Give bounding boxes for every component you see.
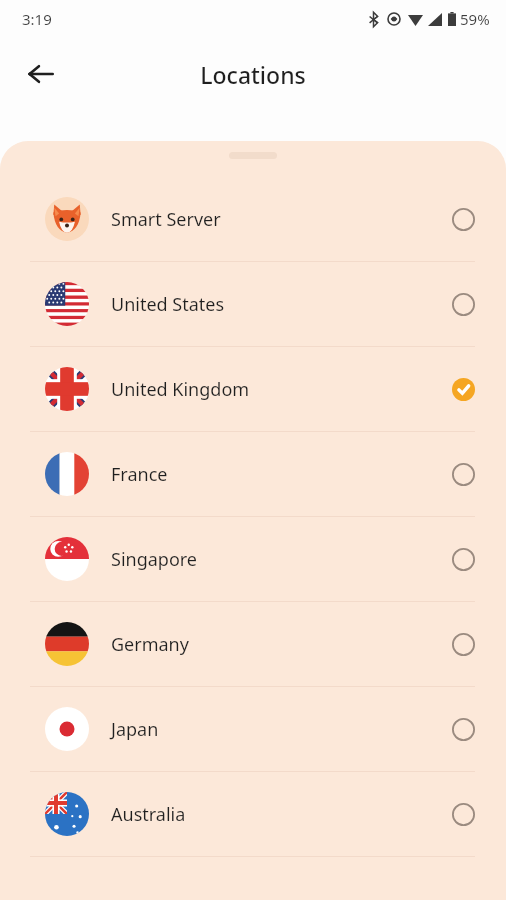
staticText: Locations bbox=[200, 59, 306, 90]
staticText: Germany bbox=[111, 632, 452, 657]
staticText: Smart Server bbox=[111, 207, 452, 232]
button[interactable]: Australia bbox=[0, 772, 506, 857]
staticText: Singapore bbox=[111, 547, 452, 572]
button[interactable]: Back bbox=[16, 49, 66, 99]
button[interactable]: France bbox=[0, 432, 506, 517]
button[interactable]: United Kingdom bbox=[0, 347, 506, 432]
staticText: Japan bbox=[111, 717, 452, 742]
button[interactable]: Japan bbox=[0, 687, 506, 772]
staticText: 59% bbox=[460, 9, 490, 29]
button[interactable]: Singapore bbox=[0, 517, 506, 602]
button[interactable]: United States bbox=[0, 262, 506, 347]
staticText: Australia bbox=[111, 802, 452, 827]
staticText: United Kingdom bbox=[111, 377, 452, 402]
button[interactable]: Smart Server bbox=[0, 177, 506, 262]
staticText: 3:19 bbox=[22, 9, 52, 29]
staticText: United States bbox=[111, 292, 452, 317]
button[interactable]: Germany bbox=[0, 602, 506, 687]
staticText: France bbox=[111, 462, 452, 487]
